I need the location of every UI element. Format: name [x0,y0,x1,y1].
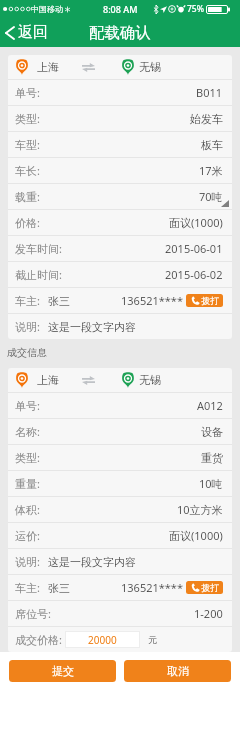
button[interactable]: 拨打 [186,294,223,307]
button[interactable]: 返回 [0,18,54,47]
staticText: 2015-06-01 [165,241,223,256]
staticText: 运价: [15,528,40,543]
staticText: 中国移动 [31,4,63,14]
staticText: 面议(1000) [169,215,223,230]
staticText: 类型: [15,450,40,465]
staticText: 板车 [201,138,223,152]
staticText: 这是一段文字内容 [48,320,136,334]
button[interactable]: 取消 [124,660,231,682]
staticText: 说明: [15,319,40,334]
staticText: 成交价格: [15,632,62,647]
staticText: 136521**** [121,293,183,308]
staticText: 20000 [88,633,117,647]
staticText: 1-200 [194,606,223,621]
staticText: 元 [148,634,157,645]
staticText: 体积: [15,502,40,517]
staticText: 配载确认 [89,23,151,43]
button[interactable]: 20000 [65,631,140,648]
staticText: 无锡 [139,60,161,74]
staticText: 席位号: [15,606,51,621]
staticText: A012 [197,398,223,413]
staticText: 载重: [15,189,40,204]
staticText: 张三 [48,581,70,595]
staticText: 成交信息 [7,346,47,359]
button[interactable]: 提交 [9,660,116,682]
staticText: 2015-06-02 [165,267,223,282]
staticText: 张三 [48,294,70,308]
staticText: 始发车 [190,112,223,126]
staticText: 车主: [15,580,40,595]
button[interactable]: 拨打 [186,581,223,594]
staticText: 上海 [37,60,59,74]
staticText: 名称: [15,424,40,439]
staticText: 类型: [15,111,40,126]
staticText: B011 [196,85,223,100]
staticText: 10立方米 [177,502,223,517]
staticText: 17米 [199,163,223,178]
staticText: 车长: [15,163,40,178]
staticText: 这是一段文字内容 [48,555,136,569]
staticText: 75% [187,3,204,15]
staticText: 10吨 [199,476,223,491]
staticText: 返回 [18,23,48,42]
staticText: 重量: [15,476,40,491]
staticText: 提交 [52,664,74,678]
staticText: 70吨 [199,189,223,204]
staticText: 说明: [15,554,40,569]
staticText: 面议(1000) [169,528,223,543]
staticText: 车主: [15,293,40,308]
staticText: 发车时间: [15,241,62,256]
staticText: 拨打 [201,582,219,593]
staticText: 上海 [37,373,59,387]
staticText: 车型: [15,137,40,152]
staticText: 设备 [201,425,223,439]
staticText: 价格: [15,215,40,230]
staticText: 8:08 AM [103,3,138,15]
staticText: 取消 [167,664,189,678]
staticText: 136521**** [121,580,183,595]
staticText: 重货 [201,451,223,465]
staticText: 单号: [15,85,40,100]
staticText: 无锡 [139,373,161,387]
staticText: 拨打 [201,295,219,306]
staticText: 截止时间: [15,267,62,282]
staticText: 单号: [15,398,40,413]
